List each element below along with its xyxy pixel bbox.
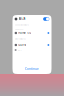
- button[interactable]: Continue: [12, 66, 51, 71]
- staticText: More: [18, 49, 22, 51]
- staticText: Continue: [25, 67, 39, 71]
- staticText: Home 5G: [18, 31, 31, 35]
- button[interactable]: Guest: [12, 43, 51, 47]
- staticText: Connected Network: [15, 24, 29, 26]
- button[interactable]: Wi-Fi: [12, 15, 51, 23]
- staticText: Guest: [18, 43, 26, 47]
- staticText: Living Room: [15, 28, 23, 30]
- button[interactable]: Home 5G: [12, 31, 51, 35]
- staticText: Wi-Fi: [19, 17, 26, 21]
- staticText: Other Networks: [15, 38, 26, 40]
